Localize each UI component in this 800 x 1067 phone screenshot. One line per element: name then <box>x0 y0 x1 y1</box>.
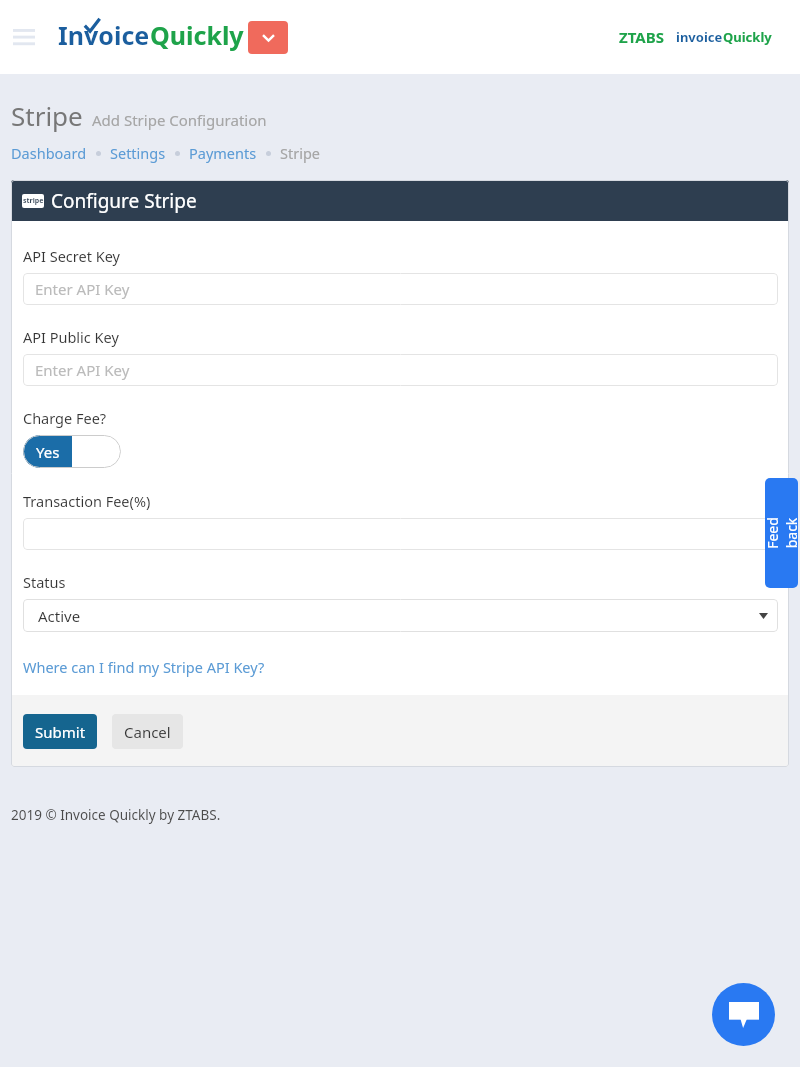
staticText: voice <box>84 18 150 52</box>
staticText: Status <box>23 572 66 592</box>
staticText: Dashboard <box>11 143 87 163</box>
staticText: Charge Fee? <box>23 408 107 428</box>
staticText: stripe <box>23 196 44 206</box>
staticText: Stripe <box>280 143 321 163</box>
button[interactable]: Feedback <box>765 478 798 588</box>
button[interactable]: Payments <box>189 143 257 163</box>
staticText: API Secret Key <box>23 246 120 266</box>
staticText: Transaction Fee(%) <box>23 491 151 511</box>
staticText: In <box>58 18 84 52</box>
staticText: Yes <box>36 442 60 462</box>
button[interactable]: Active <box>23 599 778 632</box>
staticText: Feedback <box>765 516 798 549</box>
button[interactable]: Dashboard <box>11 143 87 163</box>
staticText: Add Stripe Configuration <box>92 110 267 130</box>
staticText: Submit <box>35 722 86 742</box>
staticText: Configure Stripe <box>51 188 197 214</box>
button[interactable]: Yes <box>23 435 121 468</box>
button[interactable]: Expand <box>248 21 288 54</box>
staticText: 2019 © Invoice Quickly by ZTABS. <box>11 806 221 824</box>
button[interactable]: Enter API Key <box>23 354 778 386</box>
button[interactable]: Chat <box>712 983 775 1046</box>
staticText: Cancel <box>124 722 171 742</box>
button[interactable]: Submit <box>23 714 97 749</box>
staticText: Stripe <box>11 98 83 133</box>
staticText: Quickly <box>150 18 244 52</box>
staticText: Enter API Key <box>35 360 130 380</box>
staticText: Enter API Key <box>35 279 130 299</box>
button[interactable]: Settings <box>110 143 166 163</box>
button[interactable] <box>23 518 778 550</box>
staticText: Quickly <box>723 28 772 46</box>
button[interactable]: Menu <box>8 21 40 53</box>
staticText: Where can I find my Stripe API Key? <box>23 657 265 677</box>
staticText: ZTABS <box>619 27 664 47</box>
staticText: Active <box>38 606 81 626</box>
staticText: Payments <box>189 143 257 163</box>
staticText: API Public Key <box>23 327 119 347</box>
button[interactable]: Cancel <box>112 714 183 749</box>
button[interactable]: Where can I find my Stripe API Key? <box>23 657 265 677</box>
staticText: Settings <box>110 143 166 163</box>
staticText: invoice <box>676 28 723 46</box>
button[interactable]: Enter API Key <box>23 273 778 305</box>
